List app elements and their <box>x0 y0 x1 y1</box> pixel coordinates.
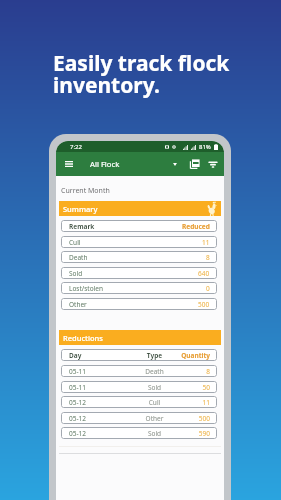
staticText: Reduced <box>182 222 210 231</box>
button[interactable]: 05-11 <box>61 381 217 393</box>
button[interactable]: Filter <box>203 152 223 176</box>
staticText: Quantity <box>178 351 210 360</box>
button[interactable]: 05-12 <box>61 396 217 408</box>
button[interactable]: Lost/stolen <box>61 282 217 294</box>
staticText: Sold <box>131 429 178 438</box>
button[interactable]: Death <box>61 251 217 263</box>
staticText: Reductions <box>63 333 103 343</box>
staticText: 05-12 <box>69 414 131 423</box>
button[interactable]: 05-12 <box>61 427 217 439</box>
staticText: Other <box>69 300 87 309</box>
staticText: Death <box>131 367 178 376</box>
staticText: Death <box>69 253 88 262</box>
button[interactable]: Day <box>61 349 217 361</box>
staticText: Cull <box>131 398 178 407</box>
staticText: 590 <box>178 429 210 438</box>
staticText: 81% <box>199 143 211 151</box>
button[interactable]: 05-11 <box>61 365 217 377</box>
button[interactable]: Other <box>61 298 217 310</box>
staticText: 8 <box>206 253 210 262</box>
staticText: Summary <box>63 204 98 214</box>
staticText: 8 <box>178 367 210 376</box>
button[interactable]: Sold <box>61 267 217 279</box>
button[interactable]: Select flock <box>165 152 185 176</box>
staticText: 11 <box>178 398 210 407</box>
staticText: Current Month <box>61 186 110 196</box>
staticText: 05-12 <box>69 429 131 438</box>
staticText: Remark <box>69 222 95 231</box>
button[interactable]: 05-12 <box>61 412 217 424</box>
staticText: Sold <box>131 383 178 392</box>
staticText: Sold <box>69 269 83 278</box>
staticText: 50 <box>178 383 210 392</box>
staticText: All Flock <box>90 159 120 169</box>
button[interactable]: Menu <box>59 152 79 176</box>
staticText: Type <box>131 351 178 360</box>
staticText: Lost/stolen <box>69 284 103 293</box>
staticText: 05-11 <box>69 367 131 376</box>
staticText: Cull <box>69 238 81 247</box>
button[interactable]: Export PDF <box>185 152 205 176</box>
staticText: 05-11 <box>69 383 131 392</box>
staticText: 500 <box>198 300 210 309</box>
staticText: 0 <box>206 284 210 293</box>
staticText: Day <box>69 351 131 360</box>
staticText: 05-12 <box>69 398 131 407</box>
button[interactable]: Remark <box>61 220 217 232</box>
staticText: 640 <box>198 269 210 278</box>
staticText: Other <box>131 414 178 423</box>
staticText: Easily track flock inventory. <box>53 49 230 99</box>
staticText: 500 <box>178 414 210 423</box>
staticText: 11 <box>202 238 210 247</box>
staticText: 7:22 <box>70 143 82 151</box>
button[interactable]: Cull <box>61 236 217 248</box>
